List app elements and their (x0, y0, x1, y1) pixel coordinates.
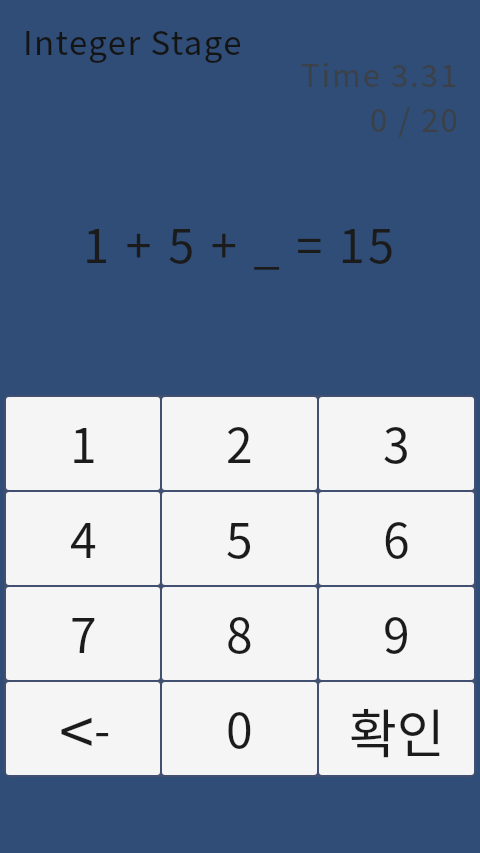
button[interactable]: 1 (6, 397, 160, 490)
staticText: 7 (70, 597, 97, 667)
staticText: - (94, 693, 111, 761)
button[interactable]: 확인 (319, 682, 474, 775)
staticText: Integer Stage (23, 17, 243, 65)
staticText: 6 (383, 502, 410, 572)
staticText: 확인 (349, 693, 445, 768)
staticText: 9 (383, 597, 410, 667)
button[interactable]: 0 (162, 682, 317, 775)
button[interactable]: < (6, 682, 160, 775)
button[interactable]: 5 (162, 492, 317, 585)
staticText: Time 3.31 (301, 51, 460, 96)
staticText: 0 / 20 (370, 96, 460, 141)
button[interactable]: 8 (162, 587, 317, 680)
staticText: 5 (226, 502, 253, 572)
staticText: 3 (383, 407, 410, 477)
button[interactable]: 6 (319, 492, 474, 585)
staticText: 8 (226, 597, 253, 667)
button[interactable]: 4 (6, 492, 160, 585)
staticText: 1 + 5 + _ = 15 (83, 208, 398, 276)
staticText: 4 (70, 502, 97, 572)
button[interactable]: 7 (6, 587, 160, 680)
staticText: < (59, 682, 94, 773)
staticText: 0 (226, 692, 253, 762)
staticText: 2 (226, 407, 253, 477)
staticText: 1 (70, 407, 97, 477)
button[interactable]: 9 (319, 587, 474, 680)
button[interactable]: 2 (162, 397, 317, 490)
button[interactable]: 3 (319, 397, 474, 490)
